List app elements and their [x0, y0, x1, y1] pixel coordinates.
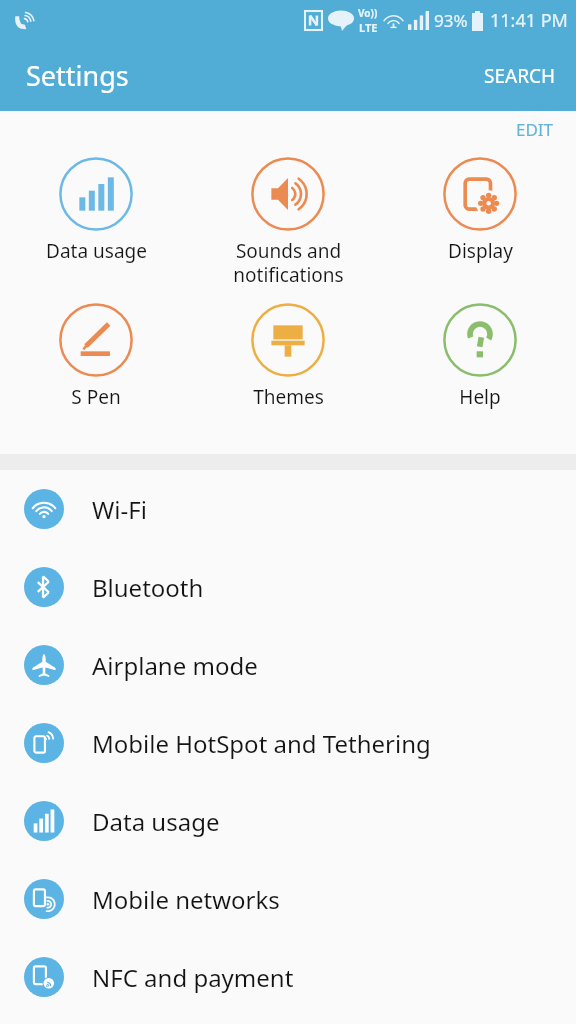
button[interactable]: Airplane mode [0, 626, 576, 704]
staticText: Data usage [46, 238, 147, 264]
staticText: Airplane mode [92, 649, 258, 682]
staticText: EDIT [516, 118, 554, 141]
staticText: S Pen [71, 384, 121, 410]
button[interactable]: Themes [192, 303, 384, 410]
button[interactable]: Mobile networks [0, 860, 576, 938]
button[interactable]: Sounds and notifications [192, 157, 384, 287]
staticText: Help [459, 384, 501, 410]
button[interactable]: Display [384, 157, 576, 264]
staticText: 93% [434, 9, 468, 32]
staticText: Wi-Fi [92, 493, 147, 526]
button[interactable]: Data usage [0, 782, 576, 860]
button[interactable]: Bluetooth [0, 548, 576, 626]
button[interactable]: S Pen [0, 303, 192, 410]
staticText: SEARCH [484, 63, 556, 89]
button[interactable]: NFC and payment [0, 938, 576, 1016]
staticText: Bluetooth [92, 571, 204, 604]
staticText: Themes [253, 384, 324, 410]
staticText: LTE [359, 20, 378, 35]
staticText: Mobile HotSpot and Tethering [92, 727, 431, 760]
staticText: Sounds and notifications [233, 238, 344, 287]
staticText: Vo)) [358, 6, 378, 20]
button[interactable]: Wi-Fi [0, 470, 576, 548]
button[interactable]: EDIT [494, 111, 576, 148]
staticText: Mobile networks [92, 883, 280, 916]
button[interactable]: Data usage [0, 157, 192, 264]
button[interactable]: Help [384, 303, 576, 410]
button[interactable]: Mobile HotSpot and Tethering [0, 704, 576, 782]
staticText: 11:41 PM [490, 8, 568, 33]
staticText: NFC and payment [92, 961, 294, 994]
staticText: Settings [26, 57, 129, 94]
staticText: Display [448, 238, 513, 264]
button[interactable]: SEARCH [464, 47, 576, 105]
staticText: Data usage [92, 805, 220, 838]
